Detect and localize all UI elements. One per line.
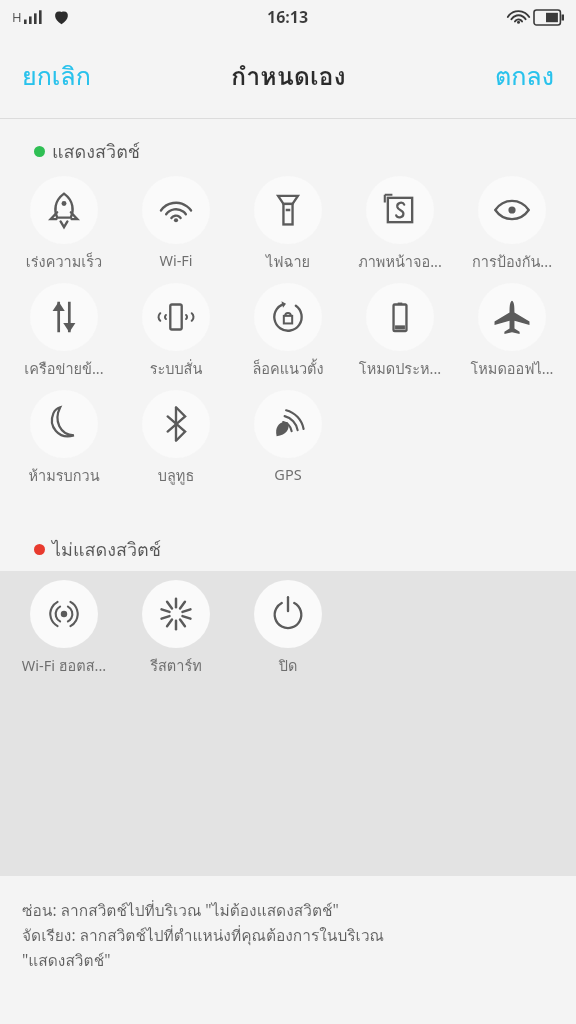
button[interactable]: เครือข่ายข้... <box>8 279 120 386</box>
button[interactable]: ภาพหน้าจอ... <box>344 172 456 279</box>
staticText: ซ่อน: ลากสวิตช์ไปที่บริเวณ "ไม่ต้องแสดงส… <box>22 898 339 923</box>
staticText: กำหนดเอง <box>231 56 346 96</box>
staticText: เครือข่ายข้... <box>8 357 120 380</box>
staticText: 16:13 <box>267 6 309 28</box>
staticText: รีสตาร์ท <box>120 654 232 677</box>
staticText: Wi-Fi <box>120 250 232 270</box>
staticText: ระบบสั่น <box>120 357 232 380</box>
staticText: GPS <box>232 464 344 484</box>
staticText: บลูทูธ <box>120 464 232 487</box>
staticText: ห้ามรบกวน <box>8 464 120 487</box>
button[interactable]: รีสตาร์ท <box>120 576 232 683</box>
staticText: ล็อคแนวตั้ง <box>232 357 344 380</box>
staticText: H <box>12 8 22 26</box>
staticText: แสดงสวิตช์ <box>52 137 141 166</box>
staticText: เร่งความเร็ว <box>8 250 120 273</box>
staticText: โหมดออฟไ... <box>456 357 568 380</box>
button[interactable]: การป้องกัน... <box>456 172 568 279</box>
staticText: การป้องกัน... <box>456 250 568 273</box>
button[interactable]: ไฟฉาย <box>232 172 344 279</box>
staticText: จัดเรียง: ลากสวิตช์ไปที่ตำแหน่งที่คุณต้อ… <box>22 923 384 948</box>
staticText: "แสดงสวิตช์" <box>22 948 111 973</box>
button[interactable]: ล็อคแนวตั้ง <box>232 279 344 386</box>
staticText: โหมดประห... <box>344 357 456 380</box>
button[interactable]: ยกเลิก <box>0 42 113 110</box>
staticText: Wi-Fi ฮอตส... <box>8 654 120 677</box>
staticText: ยกเลิก <box>22 56 91 96</box>
button[interactable]: ปิด <box>232 576 344 683</box>
button[interactable]: ห้ามรบกวน <box>8 386 120 493</box>
staticText: ตกลง <box>495 56 554 96</box>
staticText: ปิด <box>232 654 344 677</box>
staticText: ไฟฉาย <box>232 250 344 273</box>
button[interactable]: เร่งความเร็ว <box>8 172 120 279</box>
button[interactable]: โหมดออฟไ... <box>456 279 568 386</box>
button[interactable]: โหมดประห... <box>344 279 456 386</box>
button[interactable]: ตกลง <box>473 42 576 110</box>
button[interactable]: Wi-Fi <box>120 172 232 276</box>
staticText: ภาพหน้าจอ... <box>344 250 456 273</box>
button[interactable]: GPS <box>232 386 344 490</box>
button[interactable]: ระบบสั่น <box>120 279 232 386</box>
staticText: ไม่แสดงสวิตช์ <box>52 535 161 564</box>
button[interactable]: บลูทูธ <box>120 386 232 493</box>
button[interactable]: Wi-Fi ฮอตส... <box>8 576 120 683</box>
